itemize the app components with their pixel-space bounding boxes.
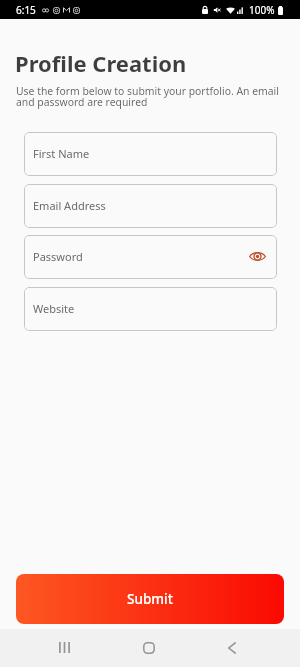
- button[interactable]: First Name: [24, 132, 277, 176]
- staticText: 100%: [249, 3, 275, 17]
- staticText: Website: [33, 301, 75, 316]
- staticText: 6:15: [16, 3, 36, 17]
- staticText: First Name: [33, 146, 90, 161]
- staticText: Email Address: [33, 198, 106, 213]
- button[interactable]: Email Address: [24, 184, 277, 228]
- button[interactable]: Home: [129, 629, 169, 667]
- button[interactable]: Back: [212, 629, 252, 667]
- button[interactable]: Recents: [44, 628, 84, 666]
- staticText: Profile Creation: [15, 48, 187, 78]
- button[interactable]: Submit: [16, 574, 284, 624]
- button[interactable]: Website: [24, 287, 277, 331]
- staticText: Password: [33, 249, 83, 264]
- button[interactable]: Show password: [245, 244, 269, 268]
- button[interactable]: Password: [24, 235, 277, 279]
- staticText: Submit: [127, 590, 173, 608]
- staticText: Use the form below to submit your portfo…: [16, 84, 284, 109]
